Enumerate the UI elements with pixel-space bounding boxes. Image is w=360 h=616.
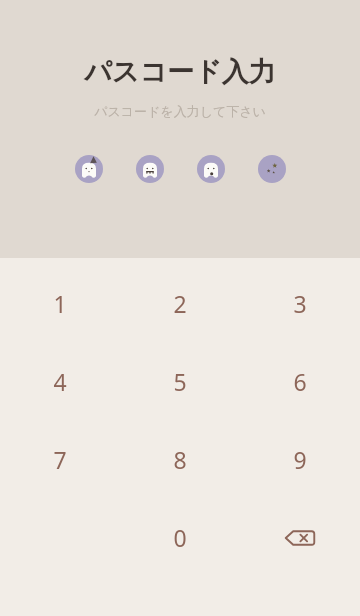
button[interactable]: 3 — [240, 277, 360, 330]
staticText: 2 — [173, 288, 187, 319]
button[interactable]: 9 — [240, 433, 360, 486]
button[interactable]: 8 — [120, 433, 240, 486]
button[interactable]: 6 — [240, 355, 360, 408]
button[interactable]: 4 — [0, 355, 120, 408]
staticText: 7 — [53, 444, 67, 475]
button[interactable]: 0 — [120, 511, 240, 564]
staticText: 0 — [173, 522, 187, 553]
button[interactable]: 1 — [0, 277, 120, 330]
button[interactable]: Delete — [240, 511, 360, 564]
other: Passcode digit 4 — [258, 155, 286, 183]
staticText: 6 — [293, 366, 307, 397]
button[interactable]: 5 — [120, 355, 240, 408]
button[interactable]: 2 — [120, 277, 240, 330]
staticText: パスコード入力 — [84, 55, 276, 89]
staticText: 5 — [173, 366, 187, 397]
staticText: 3 — [293, 288, 307, 319]
staticText: 1 — [53, 288, 67, 319]
other: Passcode digit 3 — [197, 155, 225, 183]
staticText: 4 — [53, 366, 67, 397]
other: Passcode digit 1 — [75, 155, 103, 183]
staticText: パスコードを入力して下さい — [94, 103, 266, 119]
other: Passcode digit 2 — [136, 155, 164, 183]
staticText: 9 — [293, 444, 307, 475]
staticText: 8 — [173, 444, 187, 475]
button[interactable]: 7 — [0, 433, 120, 486]
